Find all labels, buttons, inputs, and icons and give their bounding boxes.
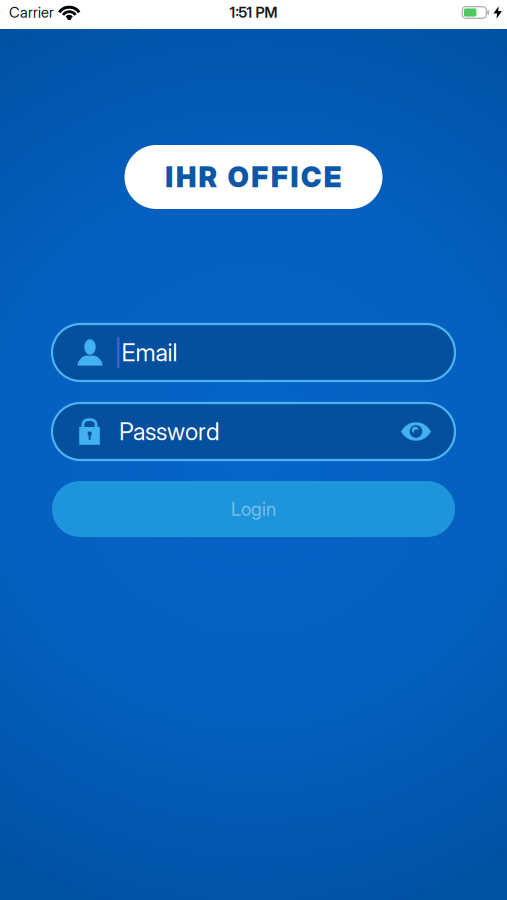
staticText: Login [231, 498, 276, 520]
staticText: Carrier [9, 4, 54, 21]
button[interactable]: Login [52, 481, 455, 537]
staticText: Password [119, 417, 220, 446]
button[interactable]: Show password [401, 422, 431, 441]
button[interactable]: Password [52, 403, 455, 460]
staticText: 1:51 PM [229, 4, 277, 21]
staticText: IHR OFFICE [165, 160, 342, 193]
button[interactable]: Email [52, 324, 455, 381]
staticText: Email [122, 338, 178, 367]
